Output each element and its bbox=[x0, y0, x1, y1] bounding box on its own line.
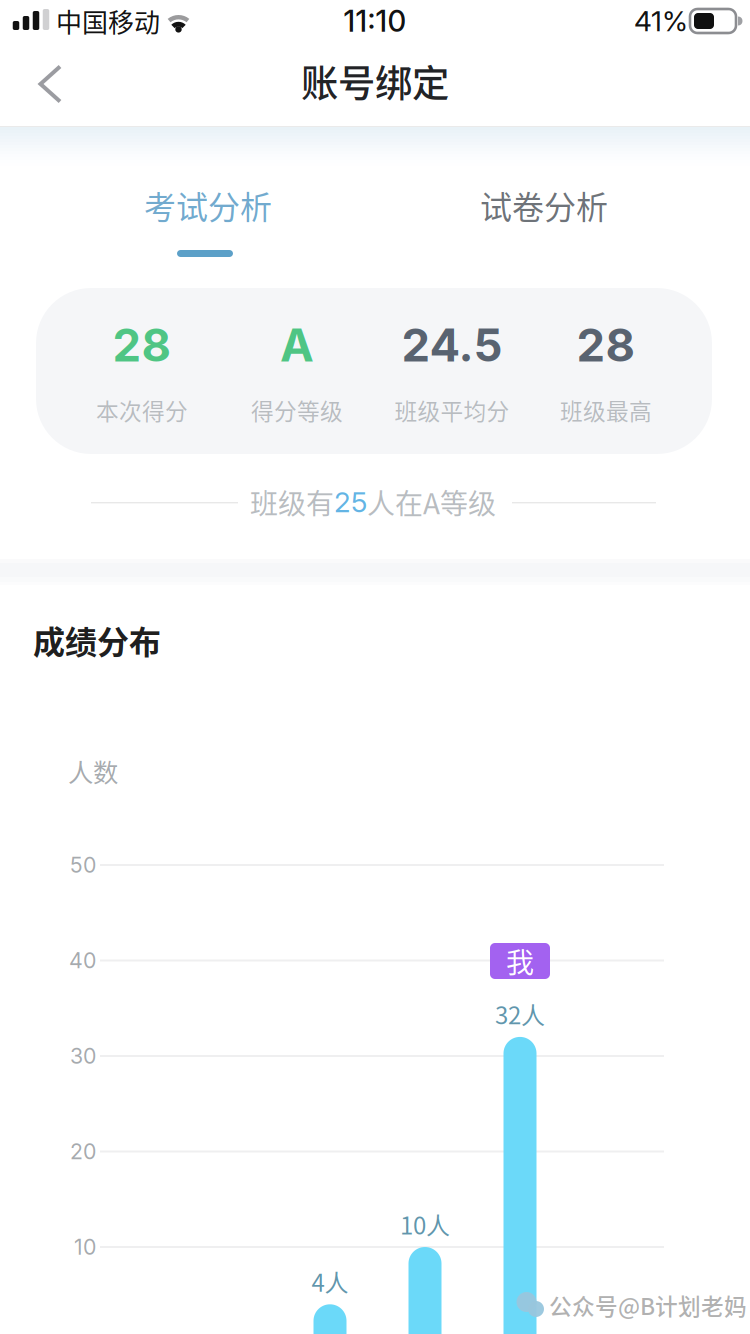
staticText: 28 bbox=[112, 318, 171, 372]
staticText: 40 bbox=[69, 948, 96, 973]
staticText: 成绩分布 bbox=[33, 617, 161, 663]
staticText: 我 bbox=[506, 941, 534, 981]
staticText: 10人 bbox=[400, 1207, 450, 1241]
staticText: 本次得分 bbox=[96, 394, 188, 426]
staticText: 32人 bbox=[495, 996, 545, 1031]
staticText: 25 bbox=[334, 485, 367, 519]
staticText: 试卷分析 bbox=[480, 182, 608, 228]
button[interactable]: 返回 bbox=[22, 56, 102, 114]
staticText: 50 bbox=[70, 852, 96, 878]
staticText: 班级有 bbox=[250, 482, 334, 522]
staticText: 20 bbox=[70, 1139, 96, 1164]
staticText: A bbox=[280, 318, 314, 372]
button[interactable]: 考试分析 bbox=[40, 183, 376, 227]
button[interactable]: 试卷分析 bbox=[376, 183, 712, 227]
staticText: 得分等级 bbox=[251, 394, 343, 426]
staticText: 考试分析 bbox=[144, 182, 272, 228]
staticText: 班级最高 bbox=[560, 394, 652, 426]
staticText: 41% bbox=[634, 4, 688, 38]
staticText: 人在A等级 bbox=[367, 482, 496, 522]
staticText: 30 bbox=[70, 1043, 96, 1069]
staticText: 人数 bbox=[68, 753, 118, 789]
staticText: 中国移动 bbox=[56, 2, 160, 40]
staticText: 28 bbox=[576, 318, 635, 372]
staticText: 账号绑定 bbox=[301, 54, 449, 108]
staticText: 10 bbox=[74, 1234, 96, 1260]
staticText: 公众号@B计划老妈 bbox=[549, 1289, 747, 1321]
staticText: 4人 bbox=[311, 1264, 348, 1299]
staticText: 11:10 bbox=[343, 3, 406, 39]
staticText: 班级平均分 bbox=[394, 394, 509, 426]
staticText: 24.5 bbox=[401, 318, 502, 372]
